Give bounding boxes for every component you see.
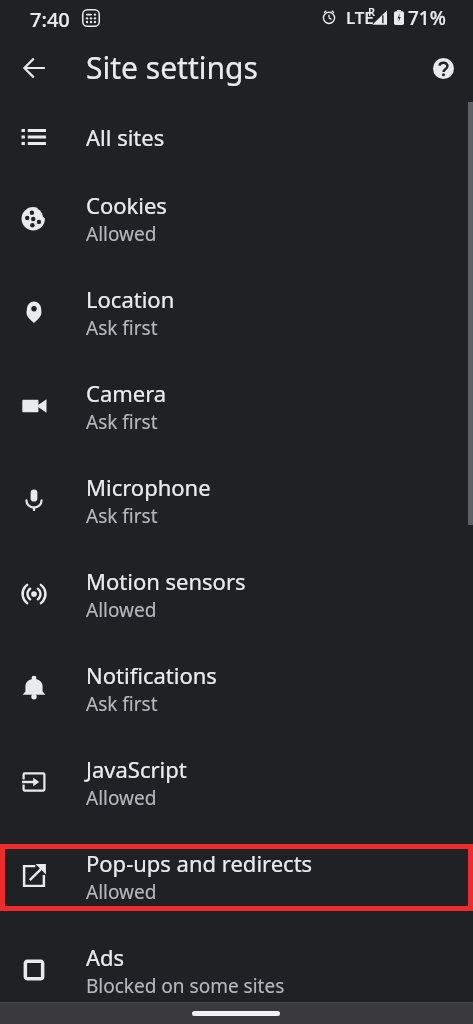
staticText: Site settings — [86, 47, 258, 88]
button[interactable]: Back — [10, 44, 58, 92]
staticText: Allowed — [86, 221, 157, 247]
button[interactable]: Camera — [0, 359, 473, 453]
staticText: Ask first — [86, 409, 158, 435]
staticText: Blocked on some sites — [86, 973, 285, 999]
staticText: Allowed — [86, 597, 157, 623]
staticText: R — [368, 4, 375, 19]
button[interactable]: Ads — [0, 923, 473, 1017]
staticText: LTE — [346, 6, 374, 29]
button[interactable]: Cookies — [0, 171, 473, 265]
staticText: Camera — [86, 378, 167, 408]
staticText: Allowed — [86, 785, 157, 811]
staticText: Notifications — [86, 660, 217, 690]
staticText: Ask first — [86, 503, 158, 529]
button[interactable]: Motion sensors — [0, 547, 473, 641]
button[interactable]: Pop-ups and redirects — [0, 829, 473, 923]
staticText: Ask first — [86, 315, 158, 341]
staticText: Allowed — [86, 879, 157, 905]
staticText: Cookies — [86, 190, 167, 220]
staticText: All sites — [86, 122, 165, 152]
button[interactable]: Help — [419, 44, 467, 92]
button[interactable]: Notifications — [0, 641, 473, 735]
button[interactable]: Location — [0, 265, 473, 359]
staticText: 7:40 — [30, 6, 70, 33]
staticText: Ask first — [86, 691, 158, 717]
staticText: Microphone — [86, 472, 211, 502]
staticText: JavaScript — [86, 754, 187, 784]
staticText: Location — [86, 284, 175, 314]
staticText: Pop-ups and redirects — [86, 848, 313, 878]
staticText: Motion sensors — [86, 566, 246, 596]
button[interactable]: All sites — [0, 102, 473, 171]
staticText: Ads — [86, 942, 125, 972]
button[interactable]: Microphone — [0, 453, 473, 547]
button[interactable]: JavaScript — [0, 735, 473, 829]
staticText: 71% — [408, 5, 446, 31]
